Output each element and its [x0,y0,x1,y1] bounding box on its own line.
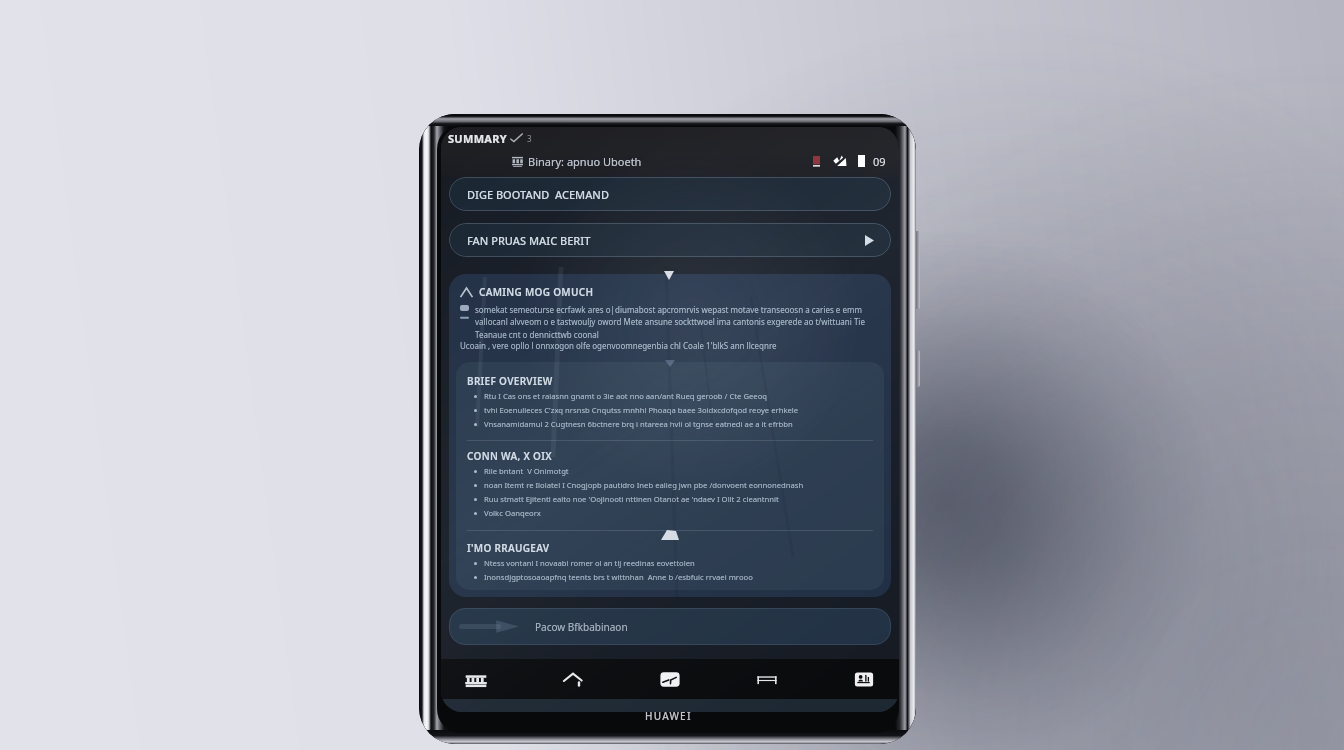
staticText: tvhi Eoenulieces C'zxq nrsnsb Cnqutss mn… [484,405,799,415]
staticText: CAMING MOG OMUCH [479,285,594,299]
staticText: FAN PRUAS MAIC BERIT [467,233,591,248]
staticText: Vnsanamidamul 2 Cugtnesn 6bctnere brq i … [484,419,793,429]
button[interactable]: FAN PRUAS MAIC BERIT [449,223,891,257]
staticText: Volkc Oanqeorx [484,508,541,518]
staticText: SUMMARY [448,131,507,146]
staticText: CONN WA, X OIX [467,449,552,463]
staticText: HUAWEI [645,709,692,723]
staticText: Ntess vontanl I novaabl romer ol an tlj … [484,558,695,568]
staticText: Ruu stmatt Ejitentl ealto noe 'Oojlnooti… [484,494,779,504]
staticText: noan Itemt re Ilolatel I Cnogjopb pautid… [484,480,804,490]
button[interactable]: CAMING MOG OMUCH [449,274,891,597]
button[interactable]: DIGE BOOTAND ACEMAND [449,177,891,211]
staticText: Rile bntant V Onimotgt [484,466,569,476]
button[interactable]: Pacow Bfkbabinaon [449,608,891,645]
staticText: Binary: apnuo Uboeth [528,154,642,169]
button[interactable]: Home [551,659,595,699]
staticText: Inonsdjgptosoaoapfnq teents brs t wittnh… [484,572,753,582]
staticText: DIGE BOOTAND ACEMAND [467,187,609,202]
staticText: Rtu I Cas ons et raiasnn gnamt o 3ie aot… [484,391,768,401]
staticText: Ucoain , vere opllo l onnxogon olfe ogen… [460,340,777,351]
staticText: I'MO RRAUGEAV [467,541,550,555]
staticText: somekat semeoturse ecrfawk ares o|diumab… [475,304,880,340]
staticText: 3 [527,133,532,144]
staticText: 09 [873,154,886,169]
button[interactable]: Panels [745,659,789,699]
staticText: BRIEF OVERVIEW [467,374,553,388]
staticText: Pacow Bfkbabinaon [535,620,628,634]
button[interactable]: Current selection [648,659,692,699]
button[interactable]: Profile [842,659,886,699]
button[interactable]: Transit [454,659,498,699]
